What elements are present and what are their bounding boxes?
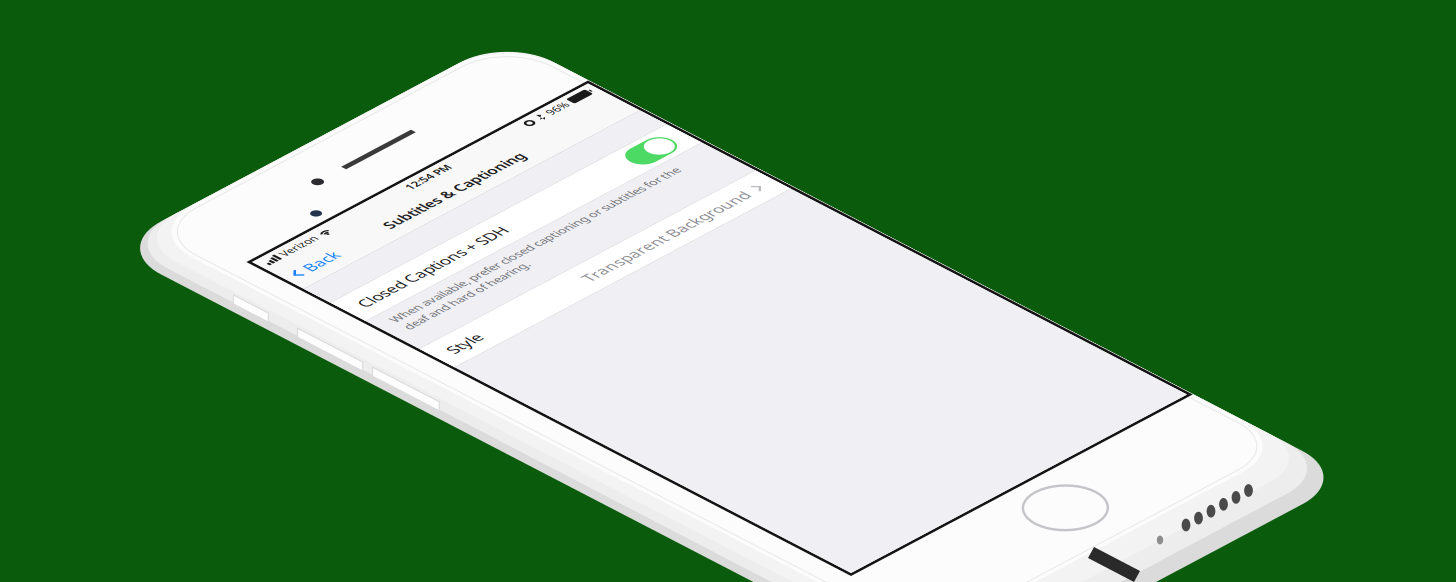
staticText: When available, prefer closed captioning…	[16, 147, 369, 181]
button[interactable]: Style	[0, 205, 414, 249]
button[interactable]: Closed Captions + SDH	[0, 96, 414, 140]
staticText: Transparent Background	[182, 216, 382, 239]
